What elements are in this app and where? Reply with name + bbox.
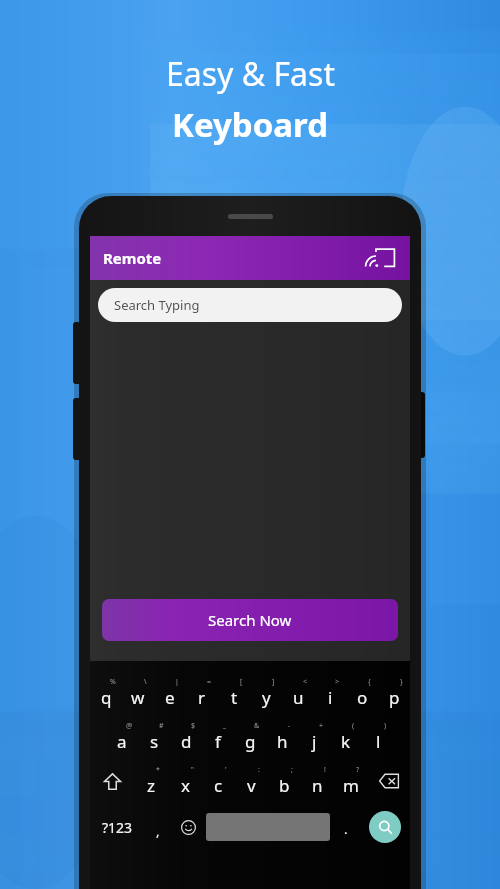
staticText: Remote — [103, 248, 162, 268]
button[interactable]: @ — [106, 715, 138, 759]
button[interactable]: ! — [301, 759, 334, 803]
staticText: g — [245, 730, 256, 753]
button[interactable]: : — [235, 759, 268, 803]
staticText: @ — [126, 721, 133, 731]
button[interactable]: _ — [202, 715, 234, 759]
button[interactable]: | — [154, 671, 186, 715]
staticText: ] — [272, 677, 275, 687]
staticText: Search Now — [208, 610, 292, 630]
button[interactable]: ) — [362, 715, 394, 759]
staticText: n — [312, 774, 323, 797]
staticText: $ — [191, 721, 196, 731]
staticText: ? — [356, 765, 360, 775]
staticText: * — [156, 765, 160, 775]
button[interactable]: < — [282, 671, 314, 715]
button[interactable]: " — [168, 759, 202, 803]
button[interactable]: - — [266, 715, 298, 759]
button[interactable]: + — [298, 715, 330, 759]
button[interactable]: Comma — [144, 803, 172, 851]
button[interactable]: ' — [202, 759, 235, 803]
staticText: # — [159, 721, 164, 731]
staticText: ; — [291, 765, 293, 775]
staticText: q — [101, 686, 112, 709]
staticText: { — [368, 677, 371, 687]
button[interactable]: } — [378, 671, 410, 715]
staticText: % — [110, 677, 116, 687]
staticText: Easy & Fast — [166, 52, 335, 96]
staticText: y — [262, 686, 271, 709]
staticText: w — [131, 686, 145, 709]
staticText: z — [147, 774, 155, 797]
button[interactable]: % — [90, 671, 122, 715]
staticText: & — [254, 721, 260, 731]
button[interactable]: > — [314, 671, 346, 715]
button[interactable]: # — [138, 715, 170, 759]
staticText: r — [198, 686, 206, 709]
staticText: j — [312, 730, 317, 753]
button[interactable]: Shift — [90, 759, 134, 803]
button[interactable]: \ — [122, 671, 154, 715]
button[interactable]: = — [186, 671, 218, 715]
button[interactable]: Search Now — [102, 599, 398, 641]
staticText: p — [389, 686, 400, 709]
button[interactable]: Cast — [370, 243, 400, 273]
staticText: , — [156, 822, 160, 840]
staticText: k — [341, 730, 351, 753]
staticText: l — [376, 730, 381, 753]
staticText: . — [344, 820, 348, 838]
button[interactable]: Space — [204, 803, 332, 851]
staticText: - — [288, 721, 291, 731]
staticText: c — [214, 774, 223, 797]
staticText: m — [343, 774, 359, 797]
staticText: < — [303, 677, 308, 687]
staticText: f — [215, 730, 221, 753]
staticText: [ — [240, 677, 243, 687]
staticText: x — [181, 774, 190, 797]
staticText: ) — [384, 721, 387, 731]
staticText: = — [207, 677, 212, 687]
staticText: t — [231, 686, 238, 709]
button[interactable]: $ — [170, 715, 202, 759]
button[interactable]: Search Typing — [98, 288, 402, 322]
staticText: s — [150, 730, 159, 753]
button[interactable]: ( — [330, 715, 362, 759]
staticText: ' — [225, 765, 227, 775]
staticText: b — [279, 774, 290, 797]
staticText: v — [247, 774, 256, 797]
staticText: i — [328, 686, 333, 709]
staticText: Search Typing — [114, 296, 200, 314]
staticText: o — [357, 686, 368, 709]
staticText: a — [117, 730, 127, 753]
button[interactable]: ?123 — [90, 803, 144, 851]
staticText: : — [258, 765, 260, 775]
staticText: | — [175, 677, 179, 687]
staticText: + — [319, 721, 324, 731]
staticText: " — [191, 765, 194, 775]
button[interactable]: Period — [332, 803, 360, 851]
staticText: } — [400, 677, 403, 687]
staticText: ( — [352, 721, 355, 731]
button[interactable]: Emoji — [172, 803, 204, 851]
staticText: u — [293, 686, 304, 709]
button[interactable]: Backspace — [367, 759, 410, 803]
button[interactable]: ] — [250, 671, 282, 715]
staticText: d — [181, 730, 192, 753]
staticText: h — [277, 730, 288, 753]
staticText: Keyboard — [172, 102, 328, 147]
staticText: ?123 — [102, 818, 133, 837]
button[interactable]: [ — [218, 671, 250, 715]
button[interactable]: ? — [334, 759, 367, 803]
staticText: ! — [324, 765, 326, 775]
button[interactable]: & — [234, 715, 266, 759]
button[interactable]: * — [134, 759, 168, 803]
button[interactable]: Search — [360, 803, 410, 851]
staticText: \ — [144, 677, 147, 687]
button[interactable]: { — [346, 671, 378, 715]
button[interactable]: ; — [268, 759, 301, 803]
staticText: e — [165, 686, 175, 709]
staticText: _ — [223, 721, 227, 731]
staticText: > — [335, 677, 340, 687]
